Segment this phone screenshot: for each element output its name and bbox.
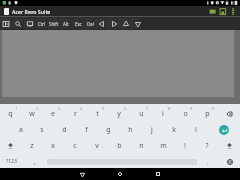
button[interactable]: Shift bbox=[218, 138, 240, 154]
staticText: f bbox=[85, 125, 88, 135]
button[interactable]: h bbox=[119, 122, 141, 138]
staticText: k bbox=[172, 125, 176, 135]
button[interactable]: Alt bbox=[60, 17, 72, 30]
button[interactable]: l bbox=[185, 122, 207, 138]
staticText: a bbox=[19, 125, 23, 135]
button[interactable]: Recent apps bbox=[139, 168, 177, 180]
staticText: 1 bbox=[15, 106, 18, 112]
staticText: s bbox=[40, 125, 44, 135]
staticText: 5 bbox=[102, 106, 105, 112]
staticText: d bbox=[62, 125, 67, 135]
button[interactable]: y bbox=[108, 106, 130, 122]
button[interactable]: i bbox=[152, 106, 174, 122]
staticText: r bbox=[74, 109, 77, 119]
button[interactable]: ?123 bbox=[0, 155, 23, 168]
staticText: ?123 bbox=[6, 158, 17, 165]
staticText: Ctrl bbox=[38, 21, 46, 27]
staticText: Del bbox=[87, 21, 94, 27]
button[interactable]: Backspace bbox=[218, 106, 240, 122]
button[interactable]: Shift bbox=[48, 17, 60, 30]
staticText: 6 bbox=[124, 106, 127, 112]
button[interactable]: a bbox=[10, 122, 31, 138]
staticText: Alt bbox=[63, 21, 69, 27]
staticText: y bbox=[117, 109, 121, 119]
staticText: . bbox=[207, 157, 209, 166]
staticText: b bbox=[117, 141, 122, 151]
staticText: o bbox=[183, 109, 188, 119]
button[interactable]: ! bbox=[174, 138, 196, 154]
staticText: 2 bbox=[36, 106, 39, 112]
button[interactable]: d bbox=[53, 122, 75, 138]
staticText: g bbox=[106, 125, 111, 135]
staticText: , bbox=[34, 157, 36, 166]
staticText: x bbox=[51, 141, 55, 151]
staticText: j bbox=[151, 125, 153, 135]
button[interactable]: Home bbox=[101, 168, 139, 180]
button[interactable]: up bbox=[120, 17, 132, 30]
staticText: 3 bbox=[58, 106, 61, 112]
staticText: 0 bbox=[212, 106, 215, 112]
button[interactable]: z bbox=[21, 138, 42, 154]
button[interactable]: n bbox=[130, 138, 152, 154]
button[interactable]: down bbox=[132, 17, 144, 30]
staticText: c bbox=[73, 141, 77, 151]
button[interactable]: ? bbox=[196, 138, 218, 154]
button[interactable]: Change language bbox=[219, 155, 240, 168]
button[interactable]: Shift bbox=[0, 138, 21, 154]
button[interactable]: t bbox=[86, 106, 108, 122]
staticText: w bbox=[29, 109, 35, 119]
staticText: Esc bbox=[75, 21, 82, 27]
button[interactable]: r bbox=[64, 106, 86, 122]
staticText: v bbox=[95, 141, 99, 151]
button[interactable]: f bbox=[75, 122, 97, 138]
staticText: Shift bbox=[49, 21, 59, 27]
button[interactable]: v bbox=[86, 138, 108, 154]
button[interactable]: w bbox=[21, 106, 42, 122]
staticText: Acer Revo Suite bbox=[12, 8, 51, 15]
button[interactable]: b bbox=[108, 138, 130, 154]
button[interactable]: x bbox=[42, 138, 64, 154]
button[interactable]: s bbox=[31, 122, 53, 138]
button[interactable]: monitor bbox=[24, 17, 36, 30]
staticText: 4 bbox=[80, 106, 83, 112]
staticText: l bbox=[195, 125, 197, 135]
staticText: 8 bbox=[168, 106, 171, 112]
staticText: z bbox=[30, 141, 34, 151]
staticText: e bbox=[51, 109, 55, 119]
button[interactable]: m bbox=[152, 138, 174, 154]
staticText: p bbox=[205, 109, 210, 119]
staticText: n bbox=[139, 141, 144, 151]
button[interactable]: Enter bbox=[207, 122, 240, 138]
button[interactable]: k bbox=[163, 122, 185, 138]
staticText: ! bbox=[184, 141, 186, 151]
button[interactable]: Back bbox=[63, 168, 101, 180]
staticText: i bbox=[162, 109, 164, 119]
button[interactable]: c bbox=[64, 138, 86, 154]
button[interactable]: Ctrl bbox=[36, 17, 48, 30]
button[interactable]: j bbox=[141, 122, 163, 138]
button[interactable]: Del bbox=[84, 17, 96, 30]
button[interactable]: g bbox=[97, 122, 119, 138]
staticText: u bbox=[139, 109, 144, 119]
staticText: m bbox=[160, 141, 167, 151]
staticText: t bbox=[96, 109, 99, 119]
button[interactable]: o bbox=[174, 106, 196, 122]
button[interactable]: left bbox=[96, 17, 108, 30]
button[interactable]: , bbox=[23, 155, 47, 168]
button[interactable]: . bbox=[197, 155, 219, 168]
staticText: 9 bbox=[190, 106, 193, 112]
button[interactable]: right bbox=[108, 17, 120, 30]
staticText: ? bbox=[205, 141, 209, 151]
button[interactable]: search bbox=[12, 17, 24, 30]
button[interactable]: q bbox=[0, 106, 21, 122]
button[interactable]: e bbox=[42, 106, 64, 122]
button[interactable]: Esc bbox=[72, 17, 84, 30]
staticText: 7 bbox=[146, 106, 149, 112]
button[interactable]: p bbox=[196, 106, 218, 122]
button[interactable]: grid bbox=[0, 17, 12, 30]
staticText: h bbox=[128, 125, 133, 135]
button[interactable]: u bbox=[130, 106, 152, 122]
staticText: q bbox=[8, 109, 13, 119]
